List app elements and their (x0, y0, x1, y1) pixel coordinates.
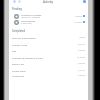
staticText: $40.00 (74, 15, 82, 18)
staticText: Activity (43, 0, 54, 4)
button[interactable]: Grocery store (9, 42, 88, 46)
staticText: $62.10 (78, 43, 85, 46)
staticText: Transfer to savings account (12, 56, 76, 59)
staticText: Monthly subscription (12, 36, 79, 39)
staticText: $14.75 (78, 69, 85, 72)
staticText: Yesterday · Pending (21, 16, 41, 19)
staticText: Transfer to wallet (21, 13, 42, 16)
button[interactable]: Transfer to wallet (9, 13, 88, 19)
staticText: Completed (12, 29, 26, 32)
staticText: $55.40 (78, 62, 85, 65)
staticText: Electric bill (12, 62, 78, 65)
staticText: $48.30 (78, 49, 85, 52)
staticText: $12.50 (74, 21, 82, 24)
staticText: Card refund (21, 19, 36, 22)
staticText: Pending (12, 7, 22, 10)
staticText: $30.00 (78, 74, 85, 77)
button[interactable]: Transfer to savings account (9, 55, 88, 59)
staticText: Grocery store (12, 43, 78, 46)
button[interactable]: Gas (9, 48, 88, 52)
staticText: $120.00 (76, 56, 85, 59)
staticText: $9.99 (79, 36, 85, 39)
button[interactable]: Back (12, 0, 17, 4)
button[interactable]: Menu (17, 0, 22, 4)
staticText: Gas (12, 49, 78, 52)
button[interactable]: Search (82, 0, 87, 4)
staticText: 2 days ago (21, 22, 32, 25)
button[interactable]: Card refund (9, 19, 88, 25)
button[interactable]: Electric bill (9, 61, 88, 65)
button[interactable]: Coffee shop (9, 68, 88, 72)
staticText: Coffee shop (12, 69, 78, 72)
button[interactable]: Monthly subscription (9, 35, 88, 39)
staticText: Annual fee (12, 74, 78, 77)
button[interactable]: Annual fee (9, 73, 88, 77)
